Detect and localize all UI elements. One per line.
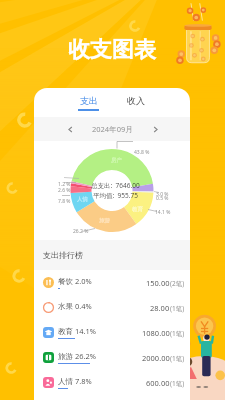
- staticText: (1笔): [170, 329, 185, 338]
- staticText: 餐饮 2.0%: [58, 276, 92, 286]
- staticText: 支出排行榜: [43, 250, 83, 260]
- staticText: 人情: [77, 196, 88, 203]
- staticText: (1笔): [170, 304, 185, 313]
- staticText: 14.1 %: [155, 209, 171, 216]
- button[interactable]: 人情 7.8%: [34, 370, 190, 395]
- staticText: 收入: [127, 95, 145, 106]
- staticText: 3.0 %: [156, 191, 169, 198]
- button[interactable]: 餐饮 2.0%: [34, 270, 190, 295]
- staticText: 0.5 %: [156, 195, 169, 202]
- staticText: 600.00: [146, 378, 170, 388]
- button[interactable]: Previous month: [62, 121, 78, 137]
- staticText: 人情 7.8%: [58, 376, 92, 386]
- staticText: 水果 0.4%: [58, 301, 92, 311]
- button[interactable]: 收入: [122, 95, 149, 111]
- staticText: (2笔): [170, 279, 185, 288]
- button[interactable]: 支出: [75, 95, 102, 111]
- staticText: 房产: [111, 157, 122, 164]
- staticText: 2000.00: [142, 353, 170, 363]
- staticText: 收支图表: [68, 36, 156, 64]
- button[interactable]: 水果 0.4%: [34, 295, 190, 320]
- staticText: 旅游 26.2%: [58, 351, 97, 361]
- staticText: 2024年09月: [92, 124, 133, 134]
- staticText: 总支出: 7646.00: [91, 181, 140, 190]
- staticText: 旅游: [99, 217, 110, 224]
- button[interactable]: Next month: [147, 121, 163, 137]
- staticText: 2.6 %: [58, 187, 71, 194]
- staticText: 1080.00: [142, 328, 170, 338]
- staticText: (1笔): [170, 354, 185, 363]
- staticText: 43.8 %: [134, 149, 150, 156]
- staticText: 教育 14.1%: [58, 326, 97, 336]
- staticText: 平均值: 955.75: [93, 191, 138, 200]
- staticText: 支出: [80, 95, 98, 106]
- button[interactable]: 教育 14.1%: [34, 320, 190, 345]
- staticText: (1笔): [170, 379, 185, 388]
- staticText: 26.2 %: [73, 228, 89, 235]
- staticText: 7.8 %: [58, 198, 71, 205]
- staticText: 150.00: [146, 278, 170, 288]
- staticText: 28.00: [150, 303, 170, 313]
- staticText: 教育: [132, 206, 143, 213]
- button[interactable]: 旅游 26.2%: [34, 345, 190, 370]
- staticText: 1.2 %: [58, 181, 71, 188]
